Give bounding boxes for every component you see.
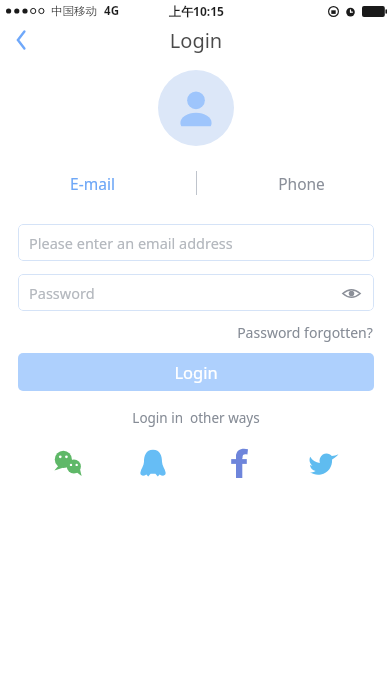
staticText: Login (0, 27, 392, 54)
button[interactable]: E-mail (58, 170, 127, 196)
staticText: Phone (278, 173, 325, 193)
staticText: Login in other ways (0, 409, 392, 427)
button[interactable]: Avatar (158, 70, 234, 146)
staticText: Login (174, 361, 218, 383)
button[interactable]: WeChat login (48, 443, 88, 483)
button[interactable]: Phone (266, 170, 337, 196)
button[interactable]: Show password (338, 280, 364, 306)
button[interactable]: Facebook login (219, 443, 259, 483)
button[interactable]: Twitter login (304, 443, 344, 483)
button[interactable]: Password (18, 274, 374, 311)
staticText: Please enter an email address (29, 233, 233, 253)
button[interactable]: Please enter an email address (18, 224, 374, 261)
staticText: Password (29, 283, 95, 303)
button[interactable]: Password forgotten? (233, 321, 377, 344)
staticText: E-mail (70, 173, 115, 193)
button[interactable]: QQ login (133, 443, 173, 483)
button[interactable]: Back (0, 22, 44, 58)
staticText: 4G (104, 3, 119, 19)
button[interactable]: Login (18, 353, 374, 391)
staticText: 上午10:15 (169, 3, 224, 19)
staticText: 中国移动 (51, 4, 97, 18)
staticText: Password forgotten? (237, 323, 373, 342)
